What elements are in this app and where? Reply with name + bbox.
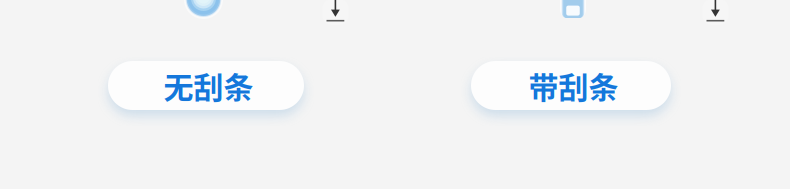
staticText: 无刮条: [163, 64, 253, 107]
staticText: 带刮条: [528, 64, 618, 107]
button[interactable]: 无刮条: [108, 61, 304, 110]
button[interactable]: Download: [702, 0, 728, 25]
button[interactable]: Download: [322, 0, 348, 25]
button[interactable]: 带刮条: [471, 61, 671, 110]
